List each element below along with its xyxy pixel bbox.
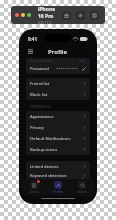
staticText: Email address: [30, 58, 54, 63]
button[interactable]: Zoom: [27, 13, 31, 17]
staticText: edit: [79, 58, 86, 63]
button[interactable]: Linked devices: [26, 161, 90, 172]
staticText: PREFERENCES: [30, 105, 52, 109]
staticText: Appearance: [30, 114, 54, 120]
staticText: 9:41: [28, 36, 37, 42]
staticText: Profile: [48, 48, 68, 56]
button[interactable]: Close: [15, 13, 19, 17]
staticText: iOS 17.5: [38, 20, 52, 24]
staticText: Search: [77, 190, 87, 194]
staticText: Friend list: [30, 81, 50, 87]
button[interactable]: Library: [22, 181, 46, 196]
button[interactable]: Profile: [46, 181, 70, 196]
button[interactable]: Search: [70, 181, 94, 196]
staticText: Backup menu: [30, 147, 58, 153]
staticText: Linked devices: [30, 164, 59, 170]
button[interactable]: Backup menu: [26, 144, 90, 155]
button[interactable]: Block list: [26, 89, 90, 100]
staticText: Library: [29, 190, 39, 194]
button[interactable]: Default Notifications: [26, 133, 90, 144]
button[interactable]: Friend list: [26, 78, 90, 89]
button[interactable]: Menu: [27, 48, 34, 55]
button[interactable]: Share: [90, 11, 99, 20]
button[interactable]: Minimize: [21, 13, 25, 17]
button[interactable]: Password: [26, 63, 90, 74]
button[interactable]: Edit password: [82, 67, 86, 71]
staticText: Block list: [30, 92, 48, 98]
button[interactable]: Appearance: [26, 111, 90, 122]
button[interactable]: Keyword detection: [26, 172, 90, 179]
button[interactable]: Settings: [76, 11, 85, 20]
staticText: Profile: [53, 190, 63, 194]
button[interactable]: Home: [62, 11, 71, 20]
staticText: Privacy: [30, 125, 44, 131]
button[interactable]: Privacy: [26, 122, 90, 133]
staticText: Keyword detection: [30, 173, 67, 179]
staticText: iPhone 16 Pro: [38, 6, 62, 20]
staticText: Password: [30, 66, 49, 72]
staticText: Default Notifications: [30, 136, 71, 142]
